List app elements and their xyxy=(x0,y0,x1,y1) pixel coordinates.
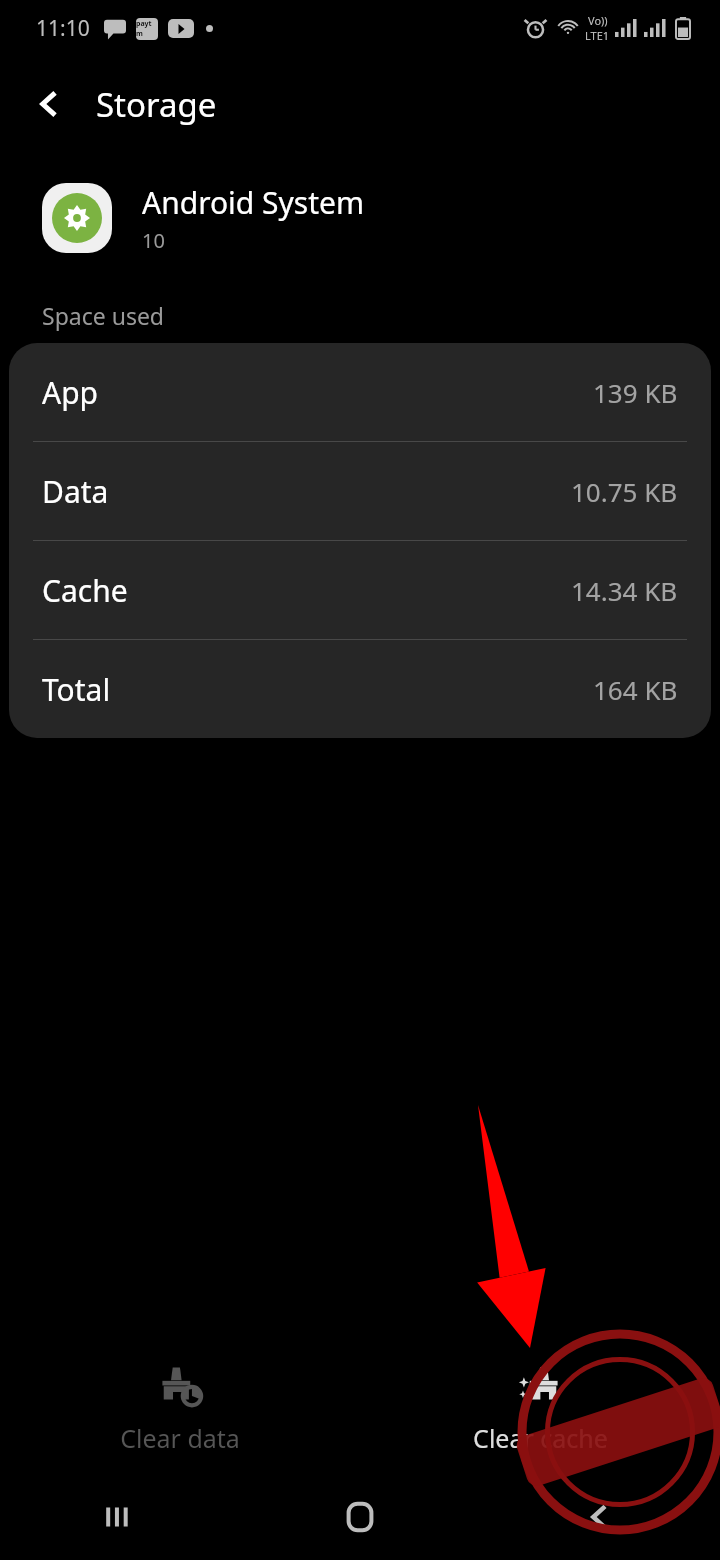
staticText: Storage xyxy=(96,82,217,127)
staticText: Vo)) xyxy=(588,13,608,28)
staticText: Data xyxy=(42,471,109,512)
staticText: Android System xyxy=(142,182,365,223)
staticText: LTE1 xyxy=(585,28,610,43)
staticText: Total xyxy=(42,669,111,710)
button[interactable]: Back xyxy=(20,74,80,134)
button[interactable]: Total xyxy=(9,640,711,738)
staticText: 11:10 xyxy=(36,14,90,43)
staticText: 14.34 KB xyxy=(571,573,678,608)
staticText: Clear data xyxy=(120,1421,240,1455)
staticText: Cache xyxy=(42,570,128,611)
button[interactable]: Recents xyxy=(0,1474,240,1560)
button[interactable]: Data xyxy=(9,442,711,541)
staticText: 10 xyxy=(142,227,165,254)
staticText: App xyxy=(42,372,99,413)
staticText: 139 KB xyxy=(593,375,678,410)
staticText: Space used xyxy=(42,300,165,331)
button[interactable]: Home xyxy=(240,1474,480,1560)
button[interactable]: App xyxy=(9,343,711,442)
staticText: 10.75 KB xyxy=(571,474,678,509)
button[interactable]: Clear data xyxy=(0,1344,360,1474)
staticText: paytm xyxy=(136,19,158,39)
button[interactable]: Clear cache xyxy=(360,1344,720,1474)
button[interactable]: Back xyxy=(480,1474,720,1560)
staticText: 164 KB xyxy=(593,672,678,707)
staticText: Clear cache xyxy=(473,1421,608,1455)
button[interactable]: Cache xyxy=(9,541,711,640)
